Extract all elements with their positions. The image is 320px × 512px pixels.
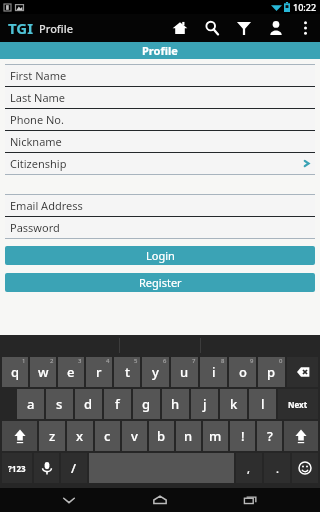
staticText: Profile xyxy=(39,21,74,36)
staticText: a xyxy=(27,395,35,413)
staticText: y xyxy=(152,363,159,381)
staticText: First Name xyxy=(10,68,67,83)
button[interactable]: n xyxy=(176,421,201,451)
staticText: Login xyxy=(146,248,175,263)
button[interactable]: j xyxy=(191,389,218,419)
button[interactable]: Phone No. xyxy=(5,109,315,130)
button[interactable]: u xyxy=(171,357,198,387)
staticText: / xyxy=(71,459,77,477)
staticText: i xyxy=(212,363,216,381)
button[interactable]: Hide keyboard xyxy=(52,488,86,512)
staticText: Nickname xyxy=(10,134,62,149)
staticText: Next xyxy=(288,399,308,410)
button[interactable]: e xyxy=(58,357,84,387)
button[interactable]: x xyxy=(67,421,93,451)
staticText: t xyxy=(125,363,130,381)
button[interactable]: . xyxy=(264,453,290,483)
button[interactable]: r xyxy=(86,357,112,387)
button[interactable]: Register xyxy=(5,273,315,292)
staticText: 7 xyxy=(192,357,196,365)
staticText: d xyxy=(84,395,93,413)
staticText: 5 xyxy=(134,357,138,365)
button[interactable]: c xyxy=(95,421,120,451)
staticText: 2 xyxy=(50,357,54,365)
button[interactable]: m xyxy=(203,421,228,451)
button[interactable]: Voice input xyxy=(34,453,59,483)
staticText: 10:22 xyxy=(293,1,317,13)
button[interactable]: Shift xyxy=(2,421,37,451)
button[interactable]: k xyxy=(220,389,247,419)
button[interactable]: t xyxy=(114,357,140,387)
button[interactable]: First Name xyxy=(5,65,315,86)
button[interactable]: h xyxy=(162,389,189,419)
staticText: s xyxy=(56,395,63,413)
button[interactable]: z xyxy=(39,421,65,451)
staticText: l xyxy=(261,395,265,413)
staticText: 9 xyxy=(250,357,254,365)
button[interactable]: Email Address xyxy=(5,195,315,216)
staticText: k xyxy=(230,395,238,413)
button[interactable]: , xyxy=(236,453,262,483)
button[interactable]: p xyxy=(258,357,285,387)
button[interactable]: Login xyxy=(5,246,315,265)
button[interactable]: Nickname xyxy=(5,131,315,152)
staticText: Profile xyxy=(142,43,178,58)
staticText: u xyxy=(180,363,189,381)
button[interactable]: f xyxy=(104,389,131,419)
button[interactable]: a xyxy=(17,389,44,419)
staticText: q xyxy=(11,363,20,381)
button[interactable]: Citizenship xyxy=(5,153,315,174)
staticText: c xyxy=(104,427,111,445)
staticText: Phone No. xyxy=(10,112,64,127)
staticText: x xyxy=(76,427,84,445)
staticText: Last Name xyxy=(10,90,66,105)
button[interactable]: d xyxy=(75,389,102,419)
button[interactable]: Password xyxy=(5,217,315,238)
button[interactable]: i xyxy=(200,357,227,387)
staticText: p xyxy=(267,363,276,381)
button[interactable]: Recents xyxy=(234,488,268,512)
button[interactable]: Shift xyxy=(284,421,318,451)
button[interactable]: ?123 xyxy=(2,453,32,483)
button[interactable]: Home xyxy=(143,488,177,512)
button[interactable]: Account xyxy=(265,14,287,42)
staticText: r xyxy=(96,363,102,381)
button[interactable]: Home xyxy=(169,14,191,42)
staticText: Password xyxy=(10,220,60,235)
button[interactable]: Emoji xyxy=(292,453,318,483)
button[interactable]: Filter xyxy=(233,14,255,42)
staticText: , xyxy=(247,461,251,476)
staticText: g xyxy=(142,395,151,413)
staticText: ! xyxy=(241,427,245,445)
button[interactable]: g xyxy=(133,389,160,419)
button[interactable]: l xyxy=(249,389,276,419)
staticText: ?123 xyxy=(8,463,26,474)
button[interactable]: y xyxy=(142,357,169,387)
button[interactable]: Last Name xyxy=(5,87,315,108)
staticText: n xyxy=(184,427,193,445)
button[interactable]: q xyxy=(2,357,28,387)
button[interactable]: o xyxy=(229,357,256,387)
staticText: f xyxy=(115,395,120,413)
staticText: Citizenship xyxy=(10,156,67,171)
staticText: w xyxy=(38,363,49,381)
button[interactable]: b xyxy=(149,421,174,451)
button[interactable]: More options xyxy=(296,14,314,42)
staticText: 1 xyxy=(22,357,26,365)
button[interactable]: v xyxy=(122,421,147,451)
button[interactable]: Search xyxy=(201,14,223,42)
button[interactable]: Next xyxy=(278,389,318,419)
staticText: 4 xyxy=(106,357,110,365)
button[interactable]: / xyxy=(61,453,87,483)
button[interactable]: w xyxy=(30,357,56,387)
staticText: m xyxy=(209,427,222,445)
staticText: ? xyxy=(267,427,273,445)
staticText: TGI xyxy=(8,18,34,38)
staticText: . xyxy=(276,461,279,476)
button[interactable]: s xyxy=(46,389,73,419)
button[interactable]: ! xyxy=(230,421,255,451)
button[interactable]: Backspace xyxy=(287,357,318,387)
staticText: o xyxy=(239,363,247,381)
button[interactable]: ? xyxy=(257,421,282,451)
